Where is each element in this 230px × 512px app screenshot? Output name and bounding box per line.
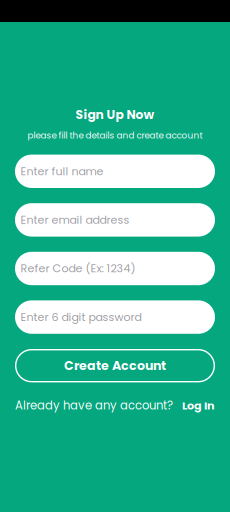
button[interactable]: Create Account <box>15 349 215 382</box>
staticText: Sign Up Now <box>75 106 154 123</box>
button[interactable]: Enter full name <box>15 155 215 188</box>
button[interactable]: Enter email address <box>15 203 215 237</box>
button[interactable]: Log In <box>182 398 215 413</box>
staticText: Log In <box>182 398 215 413</box>
staticText: Create Account <box>64 357 166 374</box>
staticText: please fill the details and create accou… <box>27 129 202 142</box>
staticText: Already have any account? <box>15 397 173 414</box>
staticText: Enter 6 digit password <box>20 309 141 325</box>
staticText: Enter full name <box>20 163 103 179</box>
button[interactable]: Enter 6 digit password <box>15 300 215 334</box>
button[interactable]: Refer Code (Ex: 1234) <box>15 252 215 285</box>
staticText: Refer Code (Ex: 1234) <box>20 261 135 276</box>
staticText: Enter email address <box>20 212 129 228</box>
